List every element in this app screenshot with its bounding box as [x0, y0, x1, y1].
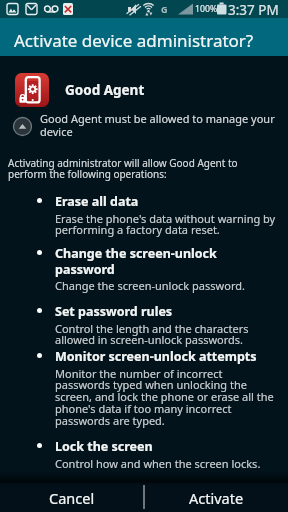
staticText: Control the length and the characters al…: [55, 321, 249, 348]
staticText: Monitor screen-unlock attempts: [55, 348, 257, 365]
staticText: Good Agent must be allowed to manage you…: [40, 111, 275, 139]
staticText: Activate device administrator?: [14, 29, 254, 52]
staticText: Erase all data: [55, 193, 139, 210]
staticText: Activate: [189, 488, 244, 508]
staticText: Activating administrator will allow Good…: [8, 156, 238, 181]
staticText: Good Agent: [65, 81, 145, 99]
staticText: Set password rules: [55, 303, 173, 320]
staticText: G: [161, 3, 168, 15]
staticText: Monitor the number of incorrect password…: [55, 366, 274, 429]
staticText: Change the screen-unlock password: [55, 245, 217, 277]
staticText: Control how and when the screen locks.: [55, 456, 261, 471]
staticText: Change the screen-unlock password.: [55, 278, 245, 293]
staticText: Erase the phone's data without warning b…: [55, 211, 276, 238]
staticText: Lock the screen: [55, 438, 153, 455]
staticText: 3:37 PM: [228, 1, 279, 19]
button[interactable]: Cancel: [0, 481, 143, 512]
button[interactable]: Activate: [145, 481, 288, 512]
staticText: Cancel: [49, 488, 95, 508]
staticText: 100%: [195, 3, 218, 15]
